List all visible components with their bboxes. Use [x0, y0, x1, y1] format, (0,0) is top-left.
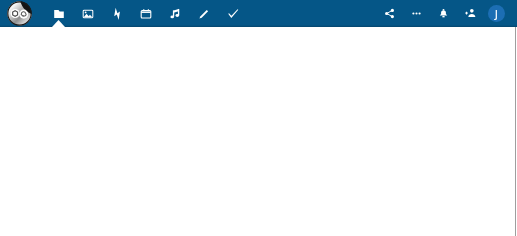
button[interactable]: Calendar	[131, 0, 160, 27]
button[interactable]: Activity	[102, 0, 131, 27]
staticText: J	[495, 7, 498, 21]
button[interactable]: Edit	[189, 0, 218, 27]
button[interactable]: Folders	[44, 0, 73, 27]
button[interactable]: Tasks	[218, 0, 247, 27]
button[interactable]: Account	[488, 5, 505, 22]
button[interactable]: Music	[160, 0, 189, 27]
button[interactable]: More options	[403, 0, 429, 27]
button[interactable]: Add people	[457, 0, 483, 27]
button[interactable]: Notifications	[430, 0, 456, 27]
button[interactable]: App logo	[7, 1, 32, 26]
button[interactable]: Share	[376, 0, 402, 27]
button[interactable]: Images	[73, 0, 102, 27]
